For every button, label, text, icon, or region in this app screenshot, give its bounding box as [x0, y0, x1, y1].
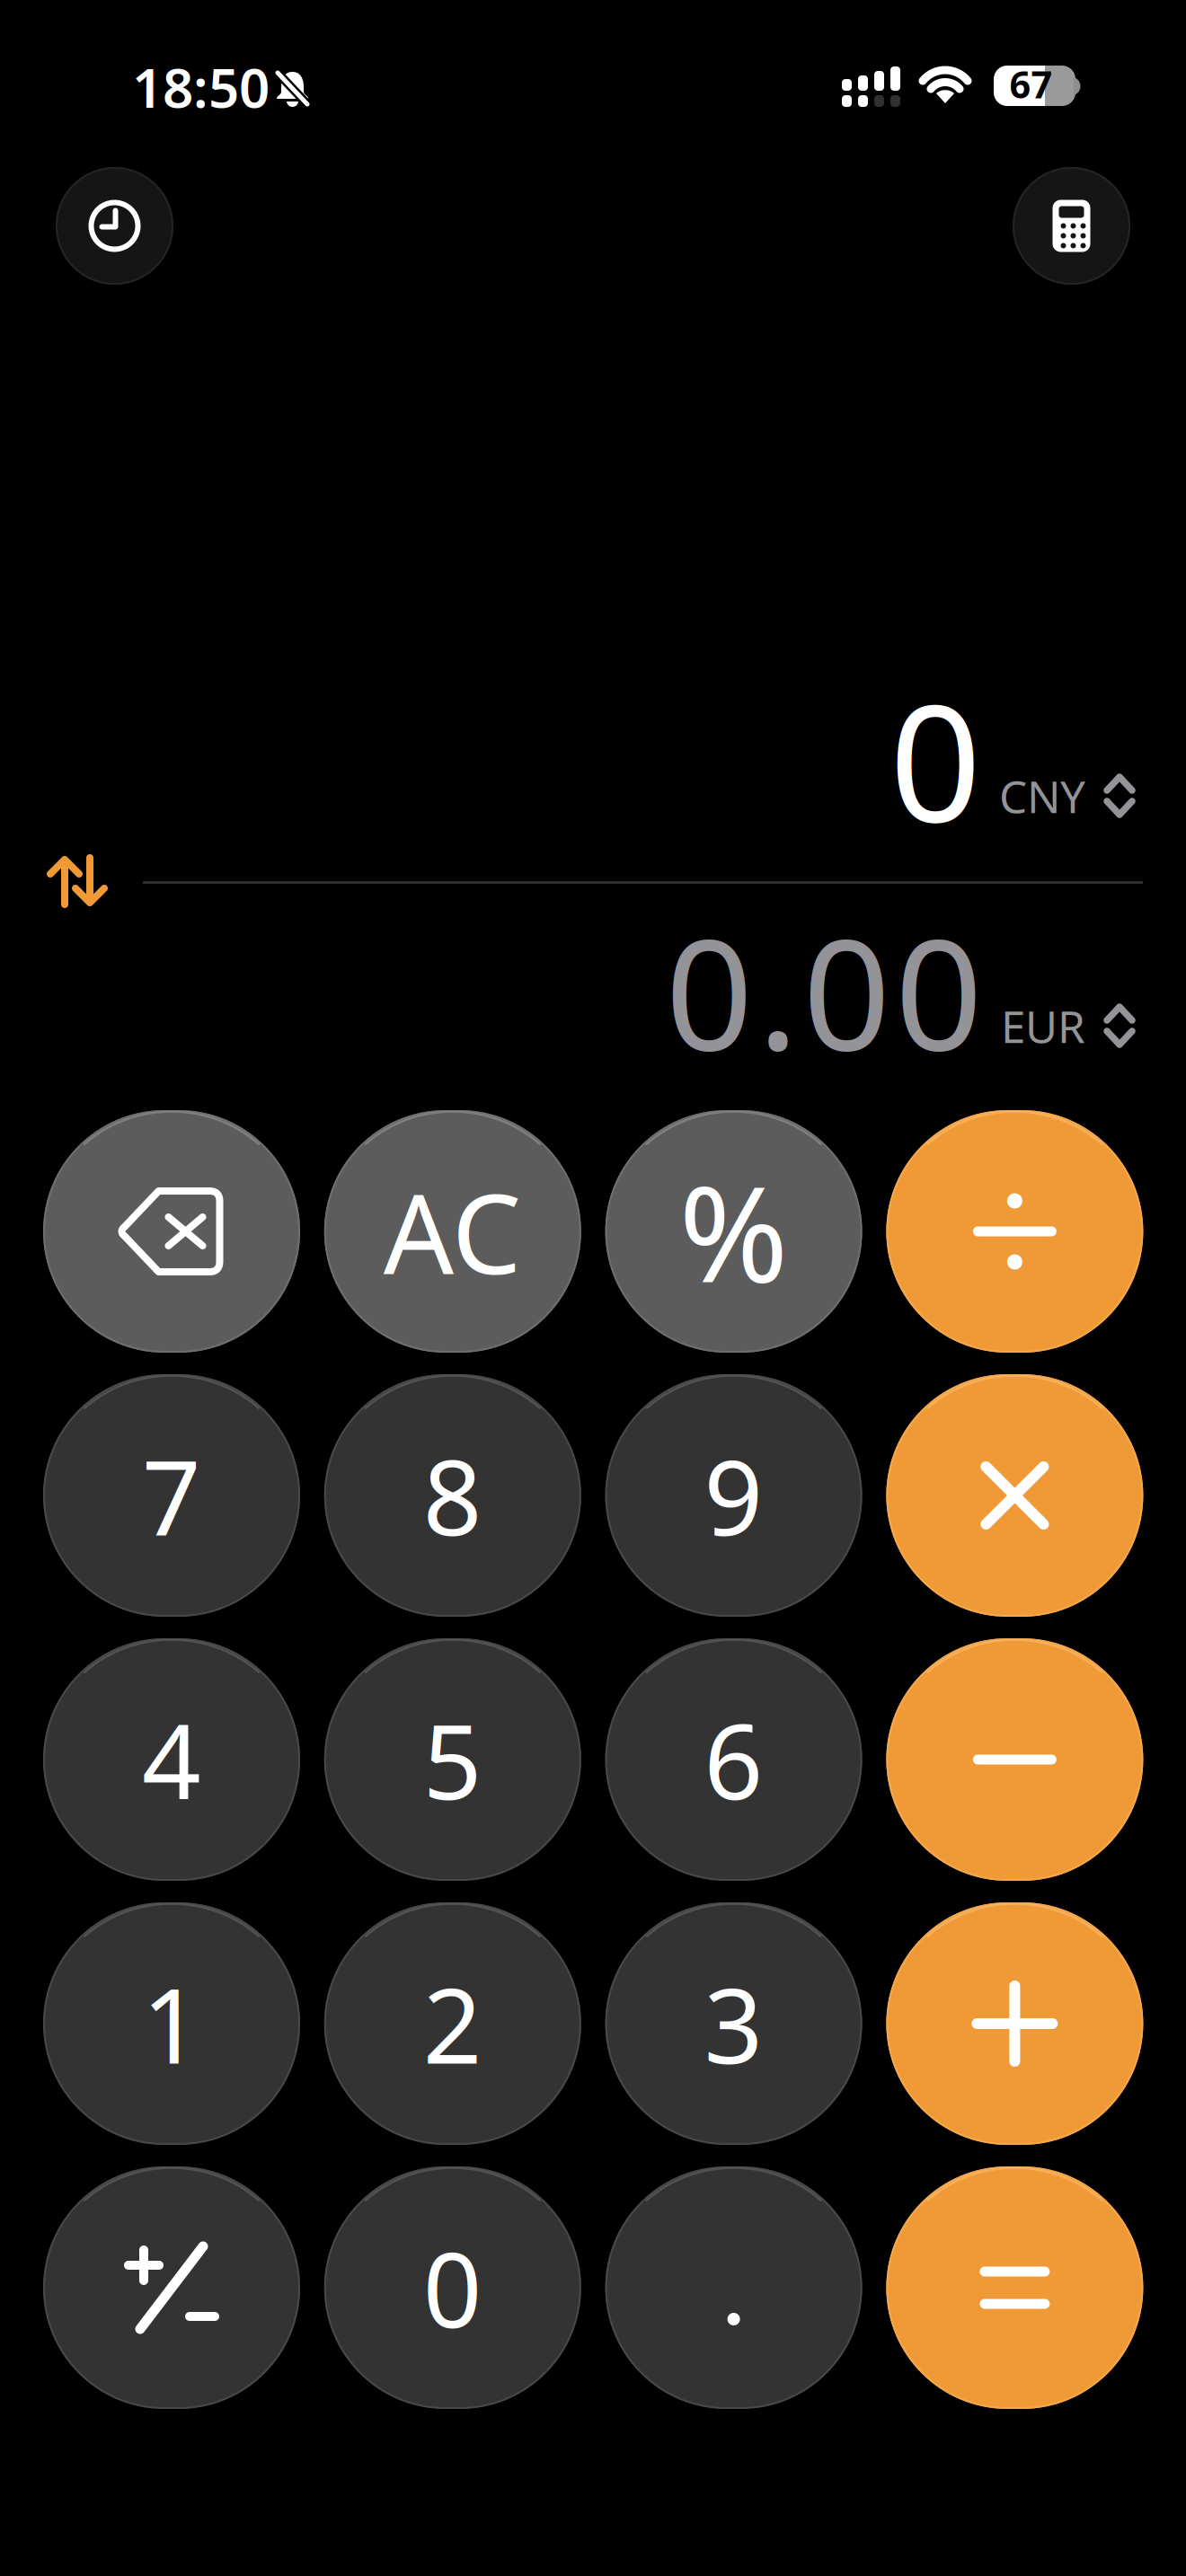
button[interactable]: Equals: [886, 2166, 1143, 2409]
button[interactable]: AC: [324, 1110, 581, 1353]
staticText: 67: [1009, 59, 1053, 109]
button[interactable]: 3: [605, 1902, 862, 2145]
button[interactable]: Recents: [56, 167, 173, 285]
button[interactable]: 0: [324, 2166, 581, 2409]
button[interactable]: 0: [622, 713, 981, 866]
staticText: %: [679, 1144, 789, 1319]
staticText: 7: [142, 1427, 201, 1564]
button[interactable]: Delete: [43, 1110, 300, 1353]
staticText: AC: [383, 1158, 522, 1305]
staticText: CNY: [999, 766, 1085, 825]
button[interactable]: 4: [43, 1638, 300, 1881]
button[interactable]: Swap currencies: [47, 856, 108, 906]
staticText: 8: [423, 1427, 482, 1564]
staticText: 4: [142, 1691, 201, 1828]
button[interactable]: Change bottom currency, EUR: [988, 1001, 1136, 1051]
button[interactable]: Change top currency, CNY: [988, 771, 1136, 821]
staticText: 6: [704, 1691, 763, 1828]
button[interactable]: 1: [43, 1902, 300, 2145]
button[interactable]: 9: [605, 1374, 862, 1617]
button[interactable]: 8: [324, 1374, 581, 1617]
button[interactable]: 5: [324, 1638, 581, 1881]
button[interactable]: 6: [605, 1638, 862, 1881]
button[interactable]: 0.00: [606, 940, 983, 1092]
staticText: EUR: [1001, 996, 1085, 1055]
button[interactable]: 7: [43, 1374, 300, 1617]
button[interactable]: Divide: [886, 1110, 1143, 1353]
button[interactable]: Calculator mode: [1013, 167, 1130, 285]
staticText: 3: [704, 1955, 763, 2092]
staticText: 9: [704, 1427, 763, 1564]
button[interactable]: %: [605, 1110, 862, 1353]
staticText: 1: [142, 1955, 201, 2092]
button[interactable]: Subtract: [886, 1638, 1143, 1881]
staticText: 0: [889, 653, 981, 866]
button[interactable]: Add: [886, 1902, 1143, 2145]
staticText: 5: [423, 1691, 482, 1828]
button[interactable]: Multiply: [886, 1374, 1143, 1617]
staticText: 0: [423, 2219, 482, 2356]
staticText: 0.00: [665, 889, 983, 1092]
staticText: 18:50: [132, 51, 270, 123]
button[interactable]: Toggle sign: [43, 2166, 300, 2409]
button[interactable]: 2: [324, 1902, 581, 2145]
button[interactable]: Decimal point: [605, 2166, 862, 2409]
staticText: 2: [423, 1955, 482, 2092]
